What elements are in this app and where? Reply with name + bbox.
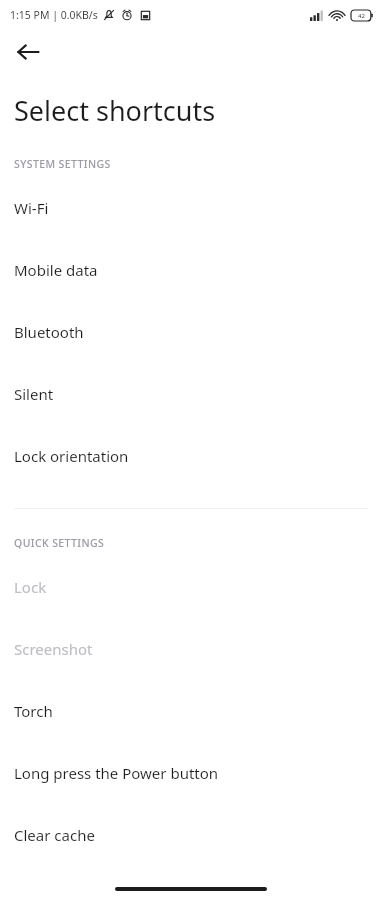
button[interactable]: Long press the Power button: [0, 742, 382, 804]
button[interactable]: Lock: [0, 556, 382, 618]
staticText: Bluetooth: [14, 322, 84, 342]
staticText: Lock: [14, 577, 47, 597]
staticText: Mobile data: [14, 260, 98, 280]
staticText: Select shortcuts: [14, 92, 216, 129]
button[interactable]: Mobile data: [0, 239, 382, 301]
button[interactable]: Screenshot: [0, 618, 382, 680]
staticText: Torch: [14, 701, 53, 721]
button[interactable]: Torch: [0, 680, 382, 742]
button[interactable]: Back: [7, 31, 49, 73]
button[interactable]: Silent: [0, 363, 382, 425]
button[interactable]: Lock orientation: [0, 425, 382, 487]
staticText: Lock orientation: [14, 446, 129, 466]
button[interactable]: Clear cache: [0, 804, 382, 866]
staticText: Screenshot: [14, 639, 93, 659]
staticText: QUICK SETTINGS: [14, 536, 105, 550]
staticText: Silent: [14, 384, 54, 404]
button[interactable]: Bluetooth: [0, 301, 382, 363]
staticText: Long press the Power button: [14, 763, 219, 783]
staticText: Wi-Fi: [14, 198, 49, 218]
staticText: 1:15 PM | 0.0KB/s: [10, 8, 98, 22]
staticText: Clear cache: [14, 825, 95, 845]
staticText: 42: [358, 12, 365, 20]
button[interactable]: Wi-Fi: [0, 177, 382, 239]
staticText: SYSTEM SETTINGS: [14, 157, 111, 171]
